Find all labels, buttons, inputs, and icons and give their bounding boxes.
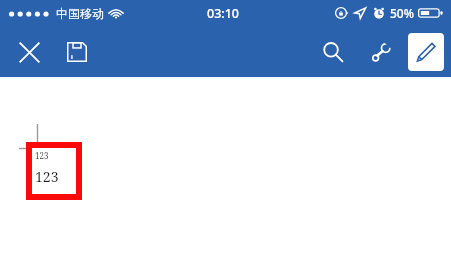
button[interactable]: Edit [408,33,444,71]
staticText: 123 [35,167,59,186]
button[interactable]: 123 [26,142,82,200]
staticText: 中国移动 [56,6,104,21]
button[interactable]: Save [56,31,98,73]
staticText: 50% [390,5,414,21]
staticText: 123 [35,150,49,161]
button[interactable]: Tools [360,31,402,73]
staticText: 03:10 [207,5,240,22]
button[interactable]: Close [8,31,50,73]
button[interactable]: Search [312,31,354,73]
